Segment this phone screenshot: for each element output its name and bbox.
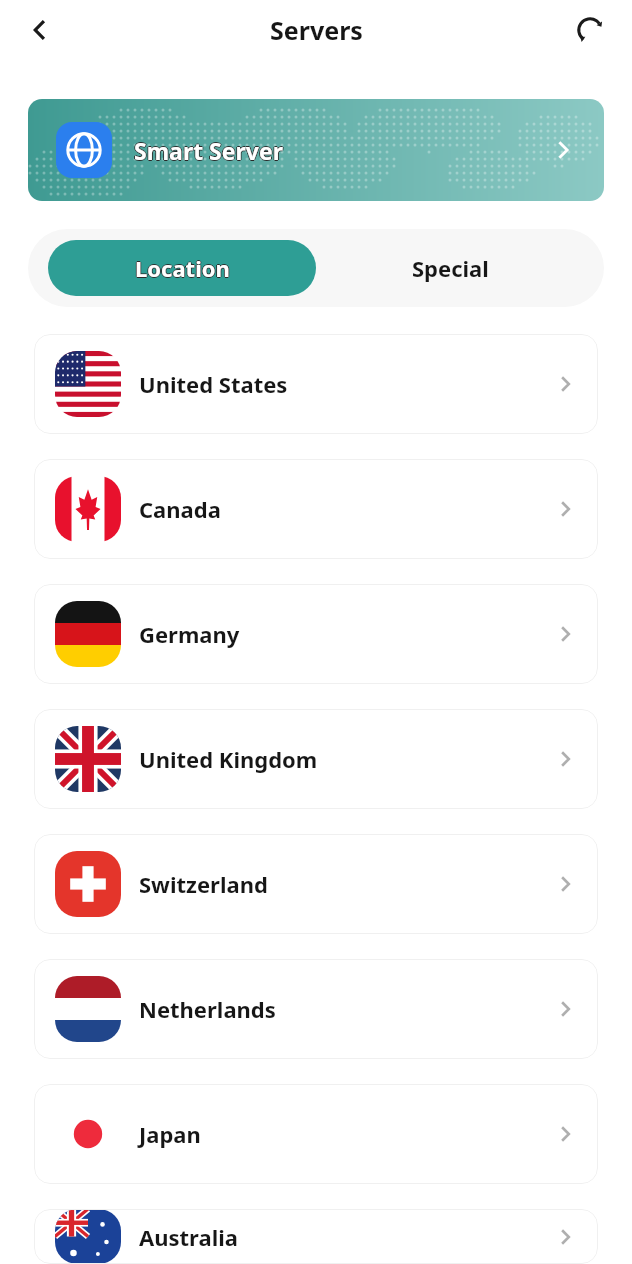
- button[interactable]: United States: [34, 334, 598, 434]
- staticText: Location: [135, 253, 230, 283]
- staticText: United States: [139, 369, 288, 399]
- staticText: Canada: [139, 494, 221, 524]
- staticText: Location: [134, 253, 229, 283]
- staticText: Smart Server: [134, 134, 283, 165]
- staticText: Special: [412, 253, 489, 283]
- button[interactable]: Smart Server: [28, 99, 604, 201]
- staticText: Germany: [139, 619, 240, 649]
- button[interactable]: Switzerland: [34, 834, 598, 934]
- staticText: Location: [136, 253, 231, 283]
- button[interactable]: Germany: [34, 584, 598, 684]
- button[interactable]: Back: [16, 6, 64, 54]
- staticText: Servers: [270, 13, 363, 47]
- staticText: Smart Server: [135, 135, 284, 166]
- button[interactable]: Refresh: [566, 6, 614, 54]
- button[interactable]: Canada: [34, 459, 598, 559]
- button[interactable]: Australia: [34, 1209, 598, 1264]
- staticText: Australia: [139, 1222, 239, 1252]
- staticText: Smart Server: [134, 136, 283, 167]
- staticText: Smart Server: [134, 135, 283, 166]
- button[interactable]: United Kingdom: [34, 709, 598, 809]
- staticText: Switzerland: [139, 869, 268, 899]
- staticText: Location: [135, 254, 230, 284]
- staticText: Smart Server: [133, 135, 282, 166]
- staticText: United Kingdom: [139, 744, 318, 774]
- staticText: Netherlands: [139, 994, 276, 1024]
- button[interactable]: Japan: [34, 1084, 598, 1184]
- button[interactable]: Netherlands: [34, 959, 598, 1059]
- button[interactable]: Location: [48, 240, 316, 296]
- staticText: Japan: [139, 1119, 201, 1149]
- staticText: Location: [135, 252, 230, 282]
- button[interactable]: Special: [316, 240, 584, 296]
